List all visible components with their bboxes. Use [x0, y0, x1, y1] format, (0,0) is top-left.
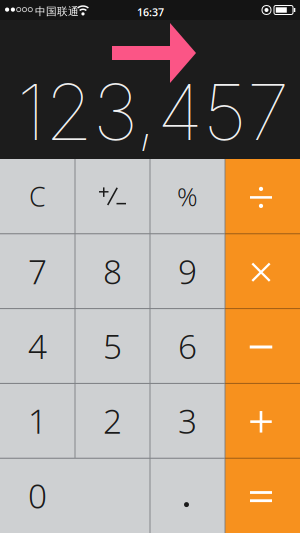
button[interactable]: Plus	[225, 383, 300, 458]
button[interactable]: 3	[150, 383, 225, 458]
button[interactable]: 1	[0, 383, 75, 458]
button[interactable]: 5	[75, 309, 150, 383]
staticText: 5	[103, 324, 122, 368]
staticText: 中国联通	[35, 5, 79, 18]
staticText: 0	[28, 473, 47, 518]
staticText: 4	[28, 324, 47, 368]
button[interactable]: Divide	[225, 159, 300, 234]
staticText: 8	[103, 249, 122, 293]
staticText: 6	[178, 324, 197, 368]
button[interactable]: %	[150, 159, 225, 234]
button[interactable]: 4	[0, 309, 75, 383]
button[interactable]: 2	[75, 383, 150, 458]
staticText: %	[177, 180, 198, 213]
button[interactable]: 7	[0, 234, 75, 309]
staticText: 2	[103, 399, 122, 443]
button[interactable]: Decimal point	[150, 458, 225, 533]
button[interactable]: 8	[75, 234, 150, 309]
button[interactable]: Minus	[225, 309, 300, 383]
staticText: 7	[28, 249, 47, 293]
staticText: 1	[28, 399, 47, 443]
staticText: 9	[178, 249, 197, 293]
staticText: 123,457	[17, 65, 289, 159]
button[interactable]: C	[0, 159, 75, 234]
staticText: C	[29, 179, 46, 214]
button[interactable]: 9	[150, 234, 225, 309]
button[interactable]: Multiply	[225, 234, 300, 309]
staticText: 3	[178, 399, 197, 443]
button[interactable]: Plus or minus	[75, 159, 150, 234]
button[interactable]: 0	[0, 458, 150, 533]
staticText: 16:37	[137, 5, 164, 19]
button[interactable]: Equals	[225, 458, 300, 533]
button[interactable]: 6	[150, 309, 225, 383]
